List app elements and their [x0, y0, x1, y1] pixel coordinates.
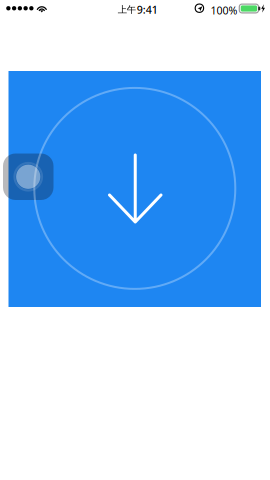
button[interactable]: Pull to refresh area [8, 71, 261, 307]
staticText: 100% [211, 3, 238, 17]
staticText: 上午 [118, 4, 136, 15]
button[interactable]: Drag handle [3, 153, 53, 200]
staticText: 9:41 [137, 3, 158, 17]
